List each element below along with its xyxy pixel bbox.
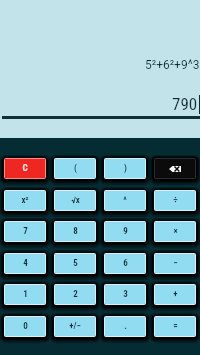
staticText: ^ [123, 195, 127, 206]
staticText: 6 [123, 258, 128, 269]
button[interactable]: . [105, 317, 145, 336]
button[interactable]: × [155, 222, 195, 241]
button[interactable]: 9 [105, 222, 145, 241]
button[interactable]: x² [5, 191, 45, 210]
staticText: = [173, 321, 178, 332]
staticText: x² [21, 195, 29, 206]
button[interactable]: 1 [5, 285, 45, 304]
staticText: 1 [23, 289, 28, 300]
button[interactable]: = [155, 317, 195, 336]
staticText: ( [74, 163, 77, 174]
staticText: + [173, 289, 178, 300]
button[interactable]: ^ [105, 191, 145, 210]
button[interactable]: 3 [105, 285, 145, 304]
button[interactable]: 4 [5, 254, 45, 273]
staticText: ÷ [173, 195, 178, 206]
button[interactable]: 6 [105, 254, 145, 273]
button[interactable]: 7 [5, 222, 45, 241]
button[interactable]: C [5, 159, 45, 178]
staticText: √x [71, 195, 80, 206]
button[interactable]: ÷ [155, 191, 195, 210]
button[interactable]: ) [105, 159, 145, 178]
button[interactable]: +/− [55, 317, 95, 336]
staticText: 9 [123, 226, 128, 237]
staticText: 0 [23, 321, 28, 332]
staticText: +/− [69, 321, 81, 332]
staticText: ) [124, 163, 127, 174]
button[interactable]: Backspace [155, 159, 195, 178]
staticText: . [124, 321, 127, 332]
button[interactable]: 0 [5, 317, 45, 336]
button[interactable]: 2 [55, 285, 95, 304]
staticText: 4 [23, 258, 28, 269]
button[interactable]: √x [55, 191, 95, 210]
button[interactable]: 5 [55, 254, 95, 273]
staticText: 3 [123, 289, 128, 300]
staticText: 5 [73, 258, 78, 269]
staticText: × [173, 226, 178, 237]
staticText: 790 [172, 94, 198, 114]
staticText: − [173, 258, 178, 269]
button[interactable]: − [155, 254, 195, 273]
button[interactable]: ( [55, 159, 95, 178]
staticText: 5²+6²+9^3 [145, 58, 200, 72]
staticText: 2 [73, 289, 78, 300]
button[interactable]: + [155, 285, 195, 304]
button[interactable]: 8 [55, 222, 95, 241]
staticText: 7 [23, 226, 28, 237]
staticText: 8 [73, 226, 78, 237]
staticText: C [22, 163, 28, 174]
